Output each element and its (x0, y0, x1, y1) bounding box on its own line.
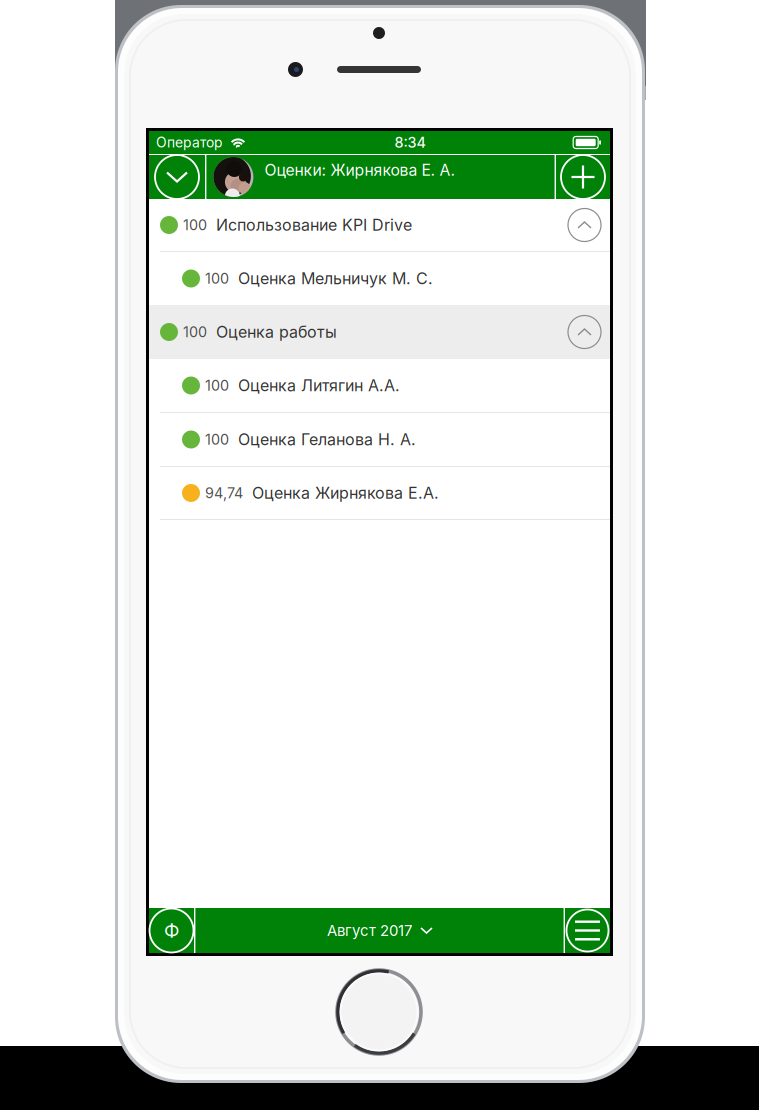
staticText: Оценка Литягин А.А. (238, 376, 400, 395)
button[interactable]: 100 (149, 199, 610, 251)
staticText: 100 (205, 431, 229, 448)
button[interactable]: Menu (565, 908, 610, 953)
button[interactable]: 94,74 (149, 467, 610, 519)
staticText: Оценка Жирнякова Е.А. (252, 483, 439, 503)
staticText: Оценки: Жирнякова Е. А. (264, 160, 455, 179)
staticText: Оценка Мельничук М. С. (238, 269, 433, 288)
button[interactable]: 100 (149, 413, 610, 466)
staticText: 100 (205, 270, 229, 287)
staticText: 8:34 (395, 134, 426, 151)
staticText: Использование KPI Drive (216, 215, 412, 235)
button[interactable]: 100 (149, 252, 610, 305)
button[interactable]: 100 (149, 359, 610, 412)
staticText: Оператор (156, 134, 222, 151)
staticText: Оценка Геланова Н. А. (238, 430, 416, 449)
staticText: Август 2017 (327, 921, 412, 940)
button[interactable]: Add (556, 155, 610, 199)
staticText: 100 (183, 323, 207, 341)
button[interactable]: Filter (149, 908, 194, 953)
staticText: Ф (164, 919, 179, 942)
button[interactable]: 100 (149, 305, 610, 359)
staticText: 94,74 (205, 484, 243, 502)
button[interactable]: Август 2017 (327, 908, 432, 953)
staticText: Оценка работы (216, 322, 337, 342)
button[interactable]: Collapse all (149, 155, 205, 199)
staticText: 100 (183, 216, 207, 234)
staticText: 100 (205, 377, 229, 394)
